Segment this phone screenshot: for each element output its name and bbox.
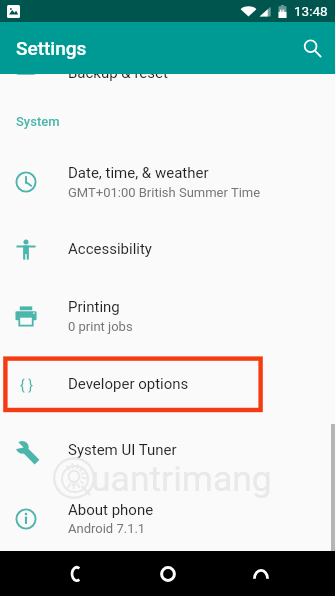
staticText: Accessibility xyxy=(68,240,152,258)
staticText: Developer options xyxy=(68,375,189,393)
staticText: uantrimang xyxy=(91,458,272,500)
button[interactable] xyxy=(0,363,335,406)
staticText: Printing xyxy=(68,298,120,316)
button[interactable] xyxy=(0,489,335,545)
staticText: GMT+01:00 British Summer Time xyxy=(68,185,261,200)
staticText: Settings xyxy=(16,37,87,59)
staticText: Backup & reset xyxy=(68,64,168,82)
button[interactable]: Search xyxy=(290,26,334,70)
button[interactable]: Back xyxy=(54,551,98,596)
button[interactable]: Home xyxy=(146,551,190,596)
button[interactable] xyxy=(0,430,335,473)
staticText: About phone xyxy=(68,501,154,519)
button[interactable] xyxy=(0,229,335,272)
staticText: Date, time, & weather xyxy=(68,164,209,182)
staticText: 13:48 xyxy=(294,3,328,19)
staticText: 0 print jobs xyxy=(68,319,133,334)
button[interactable] xyxy=(0,287,335,343)
button[interactable]: Recents xyxy=(239,551,283,596)
staticText: System xyxy=(16,114,60,129)
button[interactable] xyxy=(0,153,335,209)
staticText: System UI Tuner xyxy=(68,441,177,459)
staticText: { } xyxy=(20,377,33,393)
button[interactable] xyxy=(0,53,335,96)
staticText: Android 7.1.1 xyxy=(68,521,146,536)
